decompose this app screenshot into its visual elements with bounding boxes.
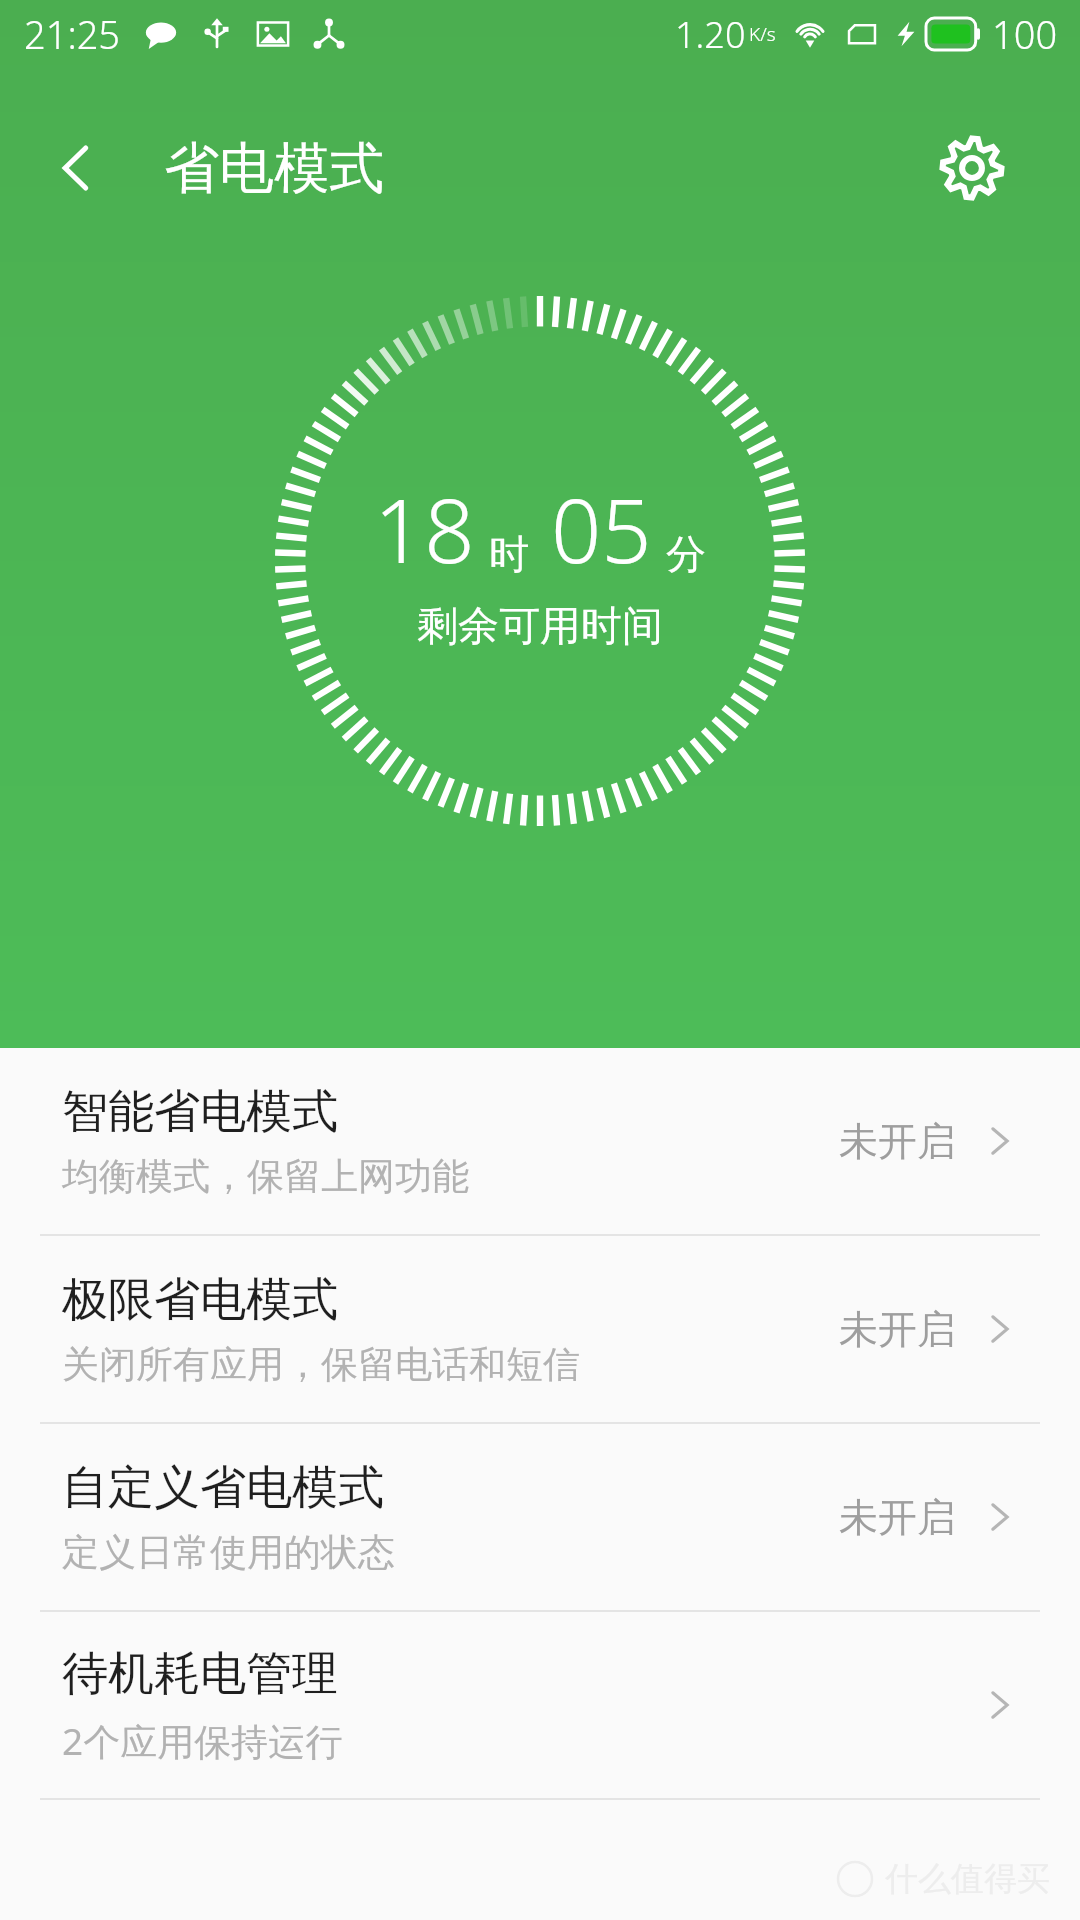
staticText: 待机耗电管理 bbox=[62, 1645, 338, 1703]
staticText: 1.20 bbox=[675, 10, 746, 59]
staticText: 极限省电模式 bbox=[62, 1271, 338, 1329]
staticText: K/s bbox=[749, 21, 776, 47]
button[interactable]: 自定义省电模式 bbox=[0, 1424, 1080, 1610]
staticText: 18 bbox=[374, 469, 475, 589]
staticText: 均衡模式，保留上网功能 bbox=[62, 1153, 469, 1200]
staticText: 智能省电模式 bbox=[62, 1083, 338, 1141]
staticText: 定义日常使用的状态 bbox=[62, 1529, 395, 1576]
button[interactable]: Back bbox=[26, 118, 126, 218]
staticText: 分 bbox=[666, 529, 706, 579]
staticText: 21:25 bbox=[24, 8, 121, 60]
staticText: 未开启 bbox=[839, 1493, 956, 1542]
staticText: 05 bbox=[551, 469, 652, 589]
button[interactable]: 智能省电模式 bbox=[0, 1048, 1080, 1234]
staticText: 未开启 bbox=[839, 1305, 956, 1354]
staticText: 2个应用保持运行 bbox=[62, 1715, 343, 1766]
staticText: 100 bbox=[992, 8, 1058, 60]
button[interactable]: Settings bbox=[922, 118, 1022, 218]
staticText: 未开启 bbox=[839, 1117, 956, 1166]
staticText: 省电模式 bbox=[164, 134, 384, 203]
staticText: 什么值得买 bbox=[885, 1858, 1050, 1900]
staticText: 剩余可用时间 bbox=[417, 601, 663, 653]
button[interactable]: 待机耗电管理 bbox=[0, 1612, 1080, 1798]
staticText: 关闭所有应用，保留电话和短信 bbox=[62, 1341, 580, 1388]
staticText: 自定义省电模式 bbox=[62, 1459, 384, 1517]
staticText: 时 bbox=[489, 529, 529, 579]
button[interactable]: 极限省电模式 bbox=[0, 1236, 1080, 1422]
